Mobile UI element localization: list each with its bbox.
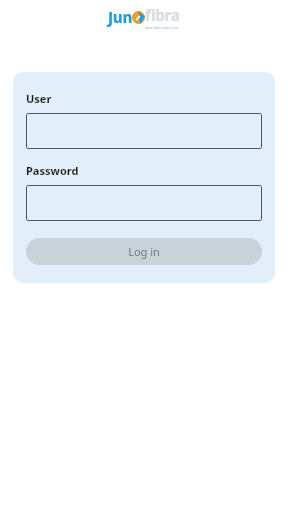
staticText: User xyxy=(26,91,52,106)
staticText: Log in xyxy=(128,244,160,259)
staticText: Jun xyxy=(108,7,132,27)
staticText: Password xyxy=(26,163,79,178)
button[interactable]: User input field xyxy=(26,113,262,149)
staticText: para todos para voce xyxy=(145,26,179,30)
button[interactable]: Password input field xyxy=(26,185,262,221)
staticText: fibra xyxy=(145,5,180,25)
button[interactable]: Log in xyxy=(26,238,262,265)
